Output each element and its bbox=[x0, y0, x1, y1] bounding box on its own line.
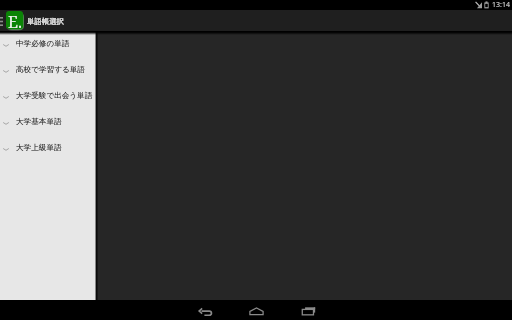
button[interactable]: Back bbox=[195, 301, 217, 320]
button[interactable]: Recent apps bbox=[298, 301, 320, 320]
button[interactable]: 中学必修の単語 bbox=[0, 32, 95, 58]
button[interactable]: Navigate up bbox=[0, 10, 5, 32]
staticText: 高校で学習する単語 bbox=[16, 65, 85, 75]
staticText: 大学受験で出会う単語 bbox=[16, 91, 93, 101]
button[interactable]: Home bbox=[245, 301, 267, 320]
staticText: 単語帳選択 bbox=[27, 17, 64, 26]
staticText: 13:14 bbox=[492, 0, 510, 10]
staticText: 高校で学習する単語 bbox=[16, 65, 85, 75]
staticText: 中学必修の単語 bbox=[16, 39, 70, 49]
staticText: 大学受験で出会う単語 bbox=[16, 91, 93, 101]
button[interactable]: 大学受験で出会う単語 bbox=[0, 84, 95, 110]
button[interactable]: 大学上級単語 bbox=[0, 136, 95, 162]
button[interactable]: 高校で学習する単語 bbox=[0, 58, 95, 84]
staticText: 大学基本単語 bbox=[16, 117, 62, 127]
staticText: 大学基本単語 bbox=[16, 117, 62, 127]
staticText: 単語帳選択 bbox=[27, 17, 64, 26]
staticText: 大学上級単語 bbox=[16, 143, 62, 153]
staticText: 大学上級単語 bbox=[16, 143, 62, 153]
staticText: E. bbox=[8, 11, 22, 29]
button[interactable]: 大学基本単語 bbox=[0, 110, 95, 136]
staticText: 中学必修の単語 bbox=[16, 39, 70, 49]
